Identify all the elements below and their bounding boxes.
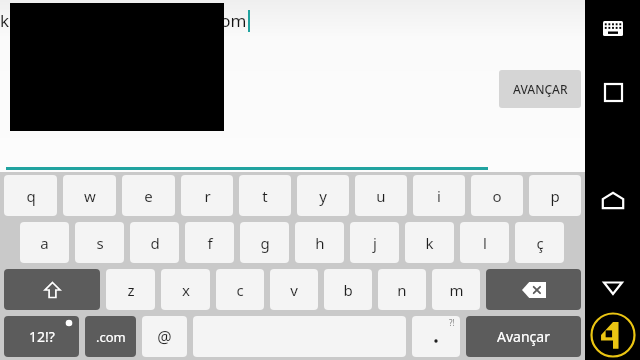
button[interactable]: a — [20, 222, 69, 263]
button[interactable]: 12!? — [4, 316, 79, 357]
staticText: .com — [96, 328, 126, 346]
staticText: r — [204, 186, 211, 206]
staticText: x — [182, 280, 190, 300]
button[interactable]: k — [405, 222, 454, 263]
staticText: z — [127, 280, 135, 300]
button[interactable]: d — [130, 222, 179, 263]
button[interactable]: v — [270, 269, 318, 310]
button[interactable]: ç — [515, 222, 564, 263]
staticText: com — [212, 9, 247, 32]
button[interactable]: n — [378, 269, 426, 310]
button[interactable]: h — [295, 222, 344, 263]
button[interactable]: l — [460, 222, 509, 263]
staticText: AVANÇAR — [513, 81, 568, 97]
button[interactable]: s — [75, 222, 124, 263]
staticText: f — [207, 233, 213, 253]
staticText: t — [262, 186, 268, 206]
button[interactable]: c — [216, 269, 264, 310]
staticText: w — [84, 186, 96, 206]
button[interactable]: g — [240, 222, 289, 263]
staticText: 12!? — [29, 327, 55, 346]
button[interactable]: t — [239, 175, 291, 216]
staticText: p — [550, 186, 560, 206]
staticText: y — [319, 186, 327, 206]
staticText: l — [483, 233, 487, 253]
button[interactable]: Avançar — [466, 316, 581, 357]
staticText: e — [144, 186, 153, 206]
staticText: a — [40, 233, 49, 253]
button[interactable]: Home — [592, 179, 634, 221]
staticText: s — [96, 233, 104, 253]
button[interactable]: Recents — [592, 71, 634, 113]
button[interactable]: e — [122, 175, 175, 216]
button[interactable]: o — [471, 175, 523, 216]
staticText: k — [425, 233, 434, 253]
staticText: c — [236, 280, 244, 300]
button[interactable]: @ — [142, 316, 187, 357]
button[interactable]: q — [4, 175, 57, 216]
staticText: v — [290, 280, 298, 300]
staticText: d — [150, 233, 160, 253]
button[interactable]: AVANÇAR — [499, 70, 581, 108]
button[interactable]: z — [106, 269, 155, 310]
button[interactable]: Assistant — [588, 310, 638, 360]
staticText: u — [376, 186, 386, 206]
staticText: Avançar — [497, 327, 550, 346]
button[interactable]: y — [297, 175, 349, 216]
button[interactable]: u — [355, 175, 407, 216]
button[interactable]: b — [324, 269, 372, 310]
staticText: j — [373, 233, 377, 253]
button[interactable]: m — [432, 269, 480, 310]
staticText: q — [26, 186, 36, 206]
staticText: o — [492, 186, 502, 206]
button[interactable]: w — [63, 175, 116, 216]
staticText: i — [437, 186, 441, 206]
staticText: b — [343, 280, 353, 300]
button[interactable]: x — [161, 269, 210, 310]
button[interactable]: Shift — [4, 269, 100, 310]
button[interactable]: r — [181, 175, 233, 216]
staticText: n — [397, 280, 407, 300]
staticText: g — [260, 233, 270, 253]
button[interactable]: j — [350, 222, 399, 263]
staticText: h — [315, 233, 325, 253]
button[interactable]: Hide keyboard — [592, 7, 634, 49]
staticText: k — [0, 9, 10, 32]
button[interactable]: Backspace — [486, 269, 581, 310]
button[interactable]: ?! — [412, 316, 460, 357]
button[interactable]: Back — [593, 268, 633, 308]
button[interactable]: i — [413, 175, 465, 216]
button[interactable]: p — [529, 175, 581, 216]
staticText: ç — [536, 233, 544, 253]
staticText: m — [449, 280, 464, 300]
staticText: ?! — [449, 317, 455, 328]
button[interactable]: f — [185, 222, 234, 263]
staticText: @ — [157, 326, 172, 348]
button[interactable]: .com — [85, 316, 136, 357]
